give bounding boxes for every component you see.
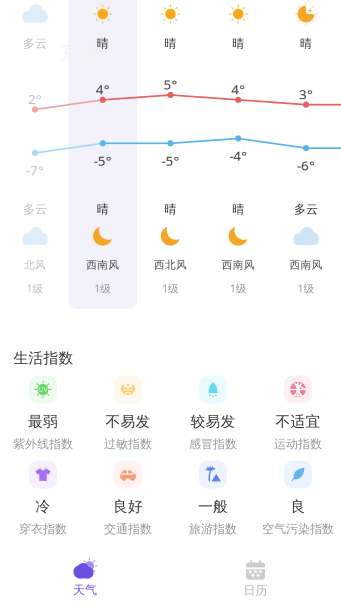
button[interactable]: UV bbox=[0, 375, 85, 451]
staticText: 京市 bbox=[60, 40, 100, 65]
staticText: 良 bbox=[290, 497, 305, 515]
staticText: 感冒指数 bbox=[189, 436, 237, 451]
staticText: 1级 bbox=[26, 281, 43, 295]
staticText: 西北风 bbox=[154, 258, 187, 271]
staticText: -6° bbox=[297, 156, 315, 174]
staticText: 天气 bbox=[73, 583, 97, 597]
button[interactable]: 冷 bbox=[0, 460, 85, 536]
staticText: 多云 bbox=[294, 202, 318, 217]
staticText: 晴 bbox=[164, 36, 176, 51]
staticText: 2° bbox=[28, 90, 42, 108]
button[interactable]: 天气 bbox=[0, 547, 170, 603]
button[interactable]: 良 bbox=[255, 460, 340, 536]
staticText: 4° bbox=[96, 80, 110, 98]
staticText: -7° bbox=[26, 161, 44, 179]
staticText: 晴 bbox=[232, 36, 244, 51]
staticText: 1级 bbox=[94, 281, 111, 295]
staticText: 一般 bbox=[198, 497, 228, 515]
staticText: 北风 bbox=[24, 258, 46, 271]
button[interactable]: 不适宜 bbox=[255, 375, 340, 451]
staticText: 日历 bbox=[243, 583, 267, 598]
staticText: 西南风 bbox=[86, 258, 119, 271]
staticText: 生活指数 bbox=[13, 349, 73, 367]
staticText: 较易发 bbox=[190, 412, 235, 430]
staticText: 西南风 bbox=[222, 258, 255, 271]
staticText: 3° bbox=[299, 85, 313, 103]
staticText: -4° bbox=[229, 147, 247, 164]
staticText: 多云 bbox=[23, 202, 47, 217]
staticText: 最弱 bbox=[28, 412, 58, 430]
staticText: 5° bbox=[163, 75, 177, 93]
staticText: 晴 bbox=[232, 202, 244, 217]
button[interactable]: 良好 bbox=[85, 460, 170, 536]
staticText: 交通指数 bbox=[104, 521, 152, 536]
staticText: 空气污染指数 bbox=[262, 521, 334, 536]
staticText: 西南风 bbox=[289, 258, 322, 271]
staticText: 晴 bbox=[97, 36, 109, 51]
staticText: 多云 bbox=[23, 36, 47, 51]
staticText: 紫外线指数 bbox=[13, 436, 73, 451]
staticText: -5° bbox=[161, 152, 179, 169]
staticText: 晴 bbox=[300, 36, 312, 51]
staticText: 晴 bbox=[97, 202, 109, 217]
staticText: 运动指数 bbox=[274, 436, 322, 451]
staticText: 过敏指数 bbox=[104, 436, 152, 451]
staticText: 1级 bbox=[297, 281, 314, 295]
button[interactable]: 较易发 bbox=[170, 375, 255, 451]
staticText: 旅游指数 bbox=[189, 521, 237, 536]
staticText: 冷 bbox=[35, 497, 50, 515]
button[interactable]: 一般 bbox=[170, 460, 255, 536]
staticText: 晴 bbox=[164, 202, 176, 217]
staticText: 穿衣指数 bbox=[19, 521, 67, 536]
button[interactable]: 不易发 bbox=[85, 375, 170, 451]
staticText: 不易发 bbox=[105, 412, 150, 430]
staticText: UV bbox=[38, 385, 47, 394]
staticText: 1级 bbox=[230, 281, 247, 295]
button[interactable]: 日历 bbox=[170, 547, 341, 603]
staticText: 4° bbox=[231, 80, 245, 98]
staticText: -5° bbox=[94, 152, 112, 169]
staticText: 良好 bbox=[113, 497, 143, 515]
staticText: 1级 bbox=[162, 281, 179, 295]
staticText: 不适宜 bbox=[275, 412, 320, 430]
